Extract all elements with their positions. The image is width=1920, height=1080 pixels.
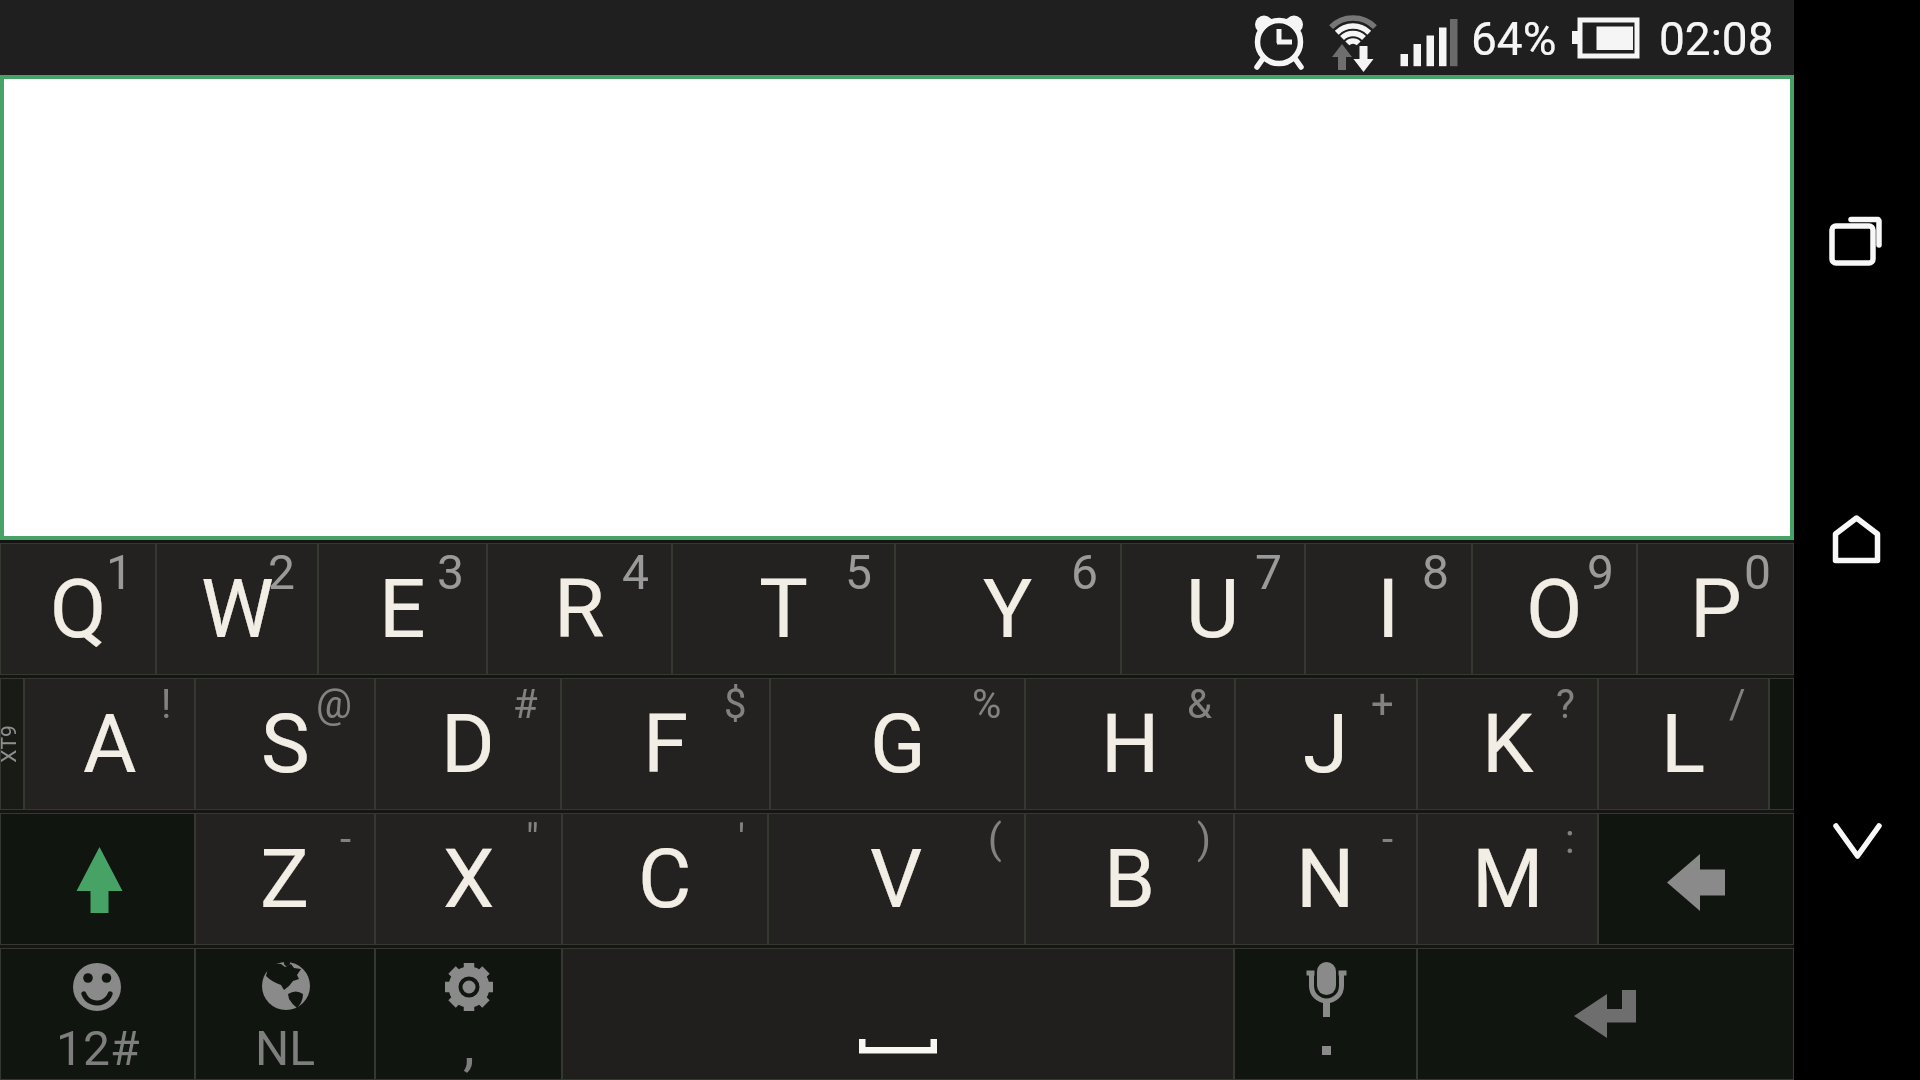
button[interactable]: Y xyxy=(896,544,1120,674)
staticText: 02:08 xyxy=(1659,12,1774,66)
staticText: + xyxy=(1371,681,1394,728)
staticText: - xyxy=(340,816,352,863)
button[interactable]: C xyxy=(563,814,767,944)
button[interactable]: F xyxy=(562,679,769,809)
button[interactable]: S xyxy=(196,679,374,809)
button[interactable] xyxy=(1599,814,1793,944)
staticText: K xyxy=(1482,696,1534,792)
button[interactable] xyxy=(1,814,194,944)
staticText: I xyxy=(1377,561,1400,657)
button[interactable]: Q xyxy=(1,544,155,674)
staticText: Q xyxy=(50,561,107,657)
button[interactable]: V xyxy=(769,814,1024,944)
button[interactable]: P xyxy=(1638,544,1793,674)
staticText: 0 xyxy=(1744,544,1771,600)
button[interactable] xyxy=(1814,800,1898,884)
staticText: 64% xyxy=(1471,12,1557,66)
staticText: @ xyxy=(316,681,352,728)
button[interactable]: U xyxy=(1122,544,1304,674)
button[interactable]: R xyxy=(488,544,671,674)
button[interactable]: J xyxy=(1236,679,1416,809)
staticText: L xyxy=(1661,696,1706,792)
staticText: $ xyxy=(724,681,747,728)
staticText: P xyxy=(1690,561,1742,657)
staticText: 2 xyxy=(268,544,295,600)
staticText: / xyxy=(1729,681,1746,728)
staticText: A xyxy=(83,696,137,792)
staticText: B xyxy=(1104,831,1156,927)
button[interactable]: L xyxy=(1599,679,1768,809)
button[interactable] xyxy=(1235,949,1416,1079)
button[interactable]: A xyxy=(25,679,194,809)
button[interactable] xyxy=(376,949,561,1079)
staticText: , xyxy=(463,1008,475,1073)
button[interactable]: G xyxy=(771,679,1024,809)
staticText: R xyxy=(554,561,605,657)
staticText: V xyxy=(870,831,923,927)
staticText: 12# xyxy=(56,1020,140,1076)
staticText: Y xyxy=(983,561,1033,657)
staticText: 5 xyxy=(845,544,872,600)
staticText: : xyxy=(1565,816,1575,863)
staticText: ! xyxy=(161,681,172,728)
button[interactable] xyxy=(1814,497,1898,581)
staticText: ( xyxy=(988,816,1002,863)
staticText: # xyxy=(513,681,538,728)
button[interactable]: X xyxy=(376,814,561,944)
button[interactable]: B xyxy=(1026,814,1233,944)
staticText: G xyxy=(870,696,926,792)
staticText: Z xyxy=(260,831,310,927)
staticText: T xyxy=(759,561,808,657)
staticText: 8 xyxy=(1422,544,1449,600)
staticText: X xyxy=(443,831,495,927)
staticText: ? xyxy=(1556,681,1575,728)
staticText: ) xyxy=(1197,816,1211,863)
button[interactable]: K xyxy=(1418,679,1597,809)
button[interactable]: T xyxy=(673,544,894,674)
staticText: 6 xyxy=(1071,544,1098,600)
staticText: 3 xyxy=(437,544,464,600)
button[interactable]: Z xyxy=(196,814,374,944)
button[interactable] xyxy=(196,949,374,1079)
staticText: M xyxy=(1472,831,1544,927)
staticText: % xyxy=(972,681,1002,728)
staticText: ' xyxy=(738,816,745,863)
button[interactable]: D xyxy=(376,679,560,809)
staticText: 4 xyxy=(622,544,649,600)
button[interactable]: E xyxy=(319,544,486,674)
staticText: D xyxy=(441,696,495,792)
button[interactable]: O xyxy=(1473,544,1636,674)
staticText: U xyxy=(1186,561,1240,657)
staticText: N xyxy=(1296,831,1355,927)
staticText: H xyxy=(1101,696,1160,792)
staticText: 9 xyxy=(1587,544,1614,600)
staticText: F xyxy=(643,696,689,792)
button[interactable]: H xyxy=(1026,679,1234,809)
staticText: 1 xyxy=(106,544,133,600)
staticText: XT9 xyxy=(0,709,27,779)
staticText: W xyxy=(201,561,274,657)
staticText: " xyxy=(526,816,539,863)
staticText: J xyxy=(1303,696,1349,792)
staticText: S xyxy=(261,696,310,792)
button[interactable] xyxy=(1814,198,1898,282)
staticText: 7 xyxy=(1255,544,1282,600)
staticText: C xyxy=(638,831,692,927)
button[interactable]: I xyxy=(1306,544,1471,674)
button[interactable] xyxy=(1,949,194,1079)
button[interactable] xyxy=(1418,949,1793,1079)
staticText: E xyxy=(379,561,426,657)
staticText: & xyxy=(1187,681,1212,728)
staticText: - xyxy=(1382,816,1394,863)
button[interactable]: W xyxy=(157,544,317,674)
button[interactable] xyxy=(563,949,1233,1079)
staticText: O xyxy=(1526,561,1583,657)
button[interactable]: M xyxy=(1418,814,1597,944)
button[interactable]: XT9 xyxy=(1,679,23,809)
staticText: NL xyxy=(255,1020,316,1076)
button[interactable]: N xyxy=(1235,814,1416,944)
